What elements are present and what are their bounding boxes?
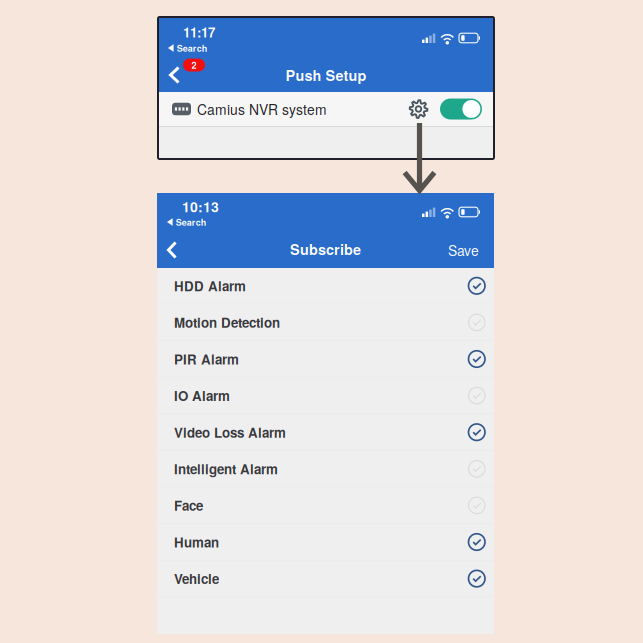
button[interactable]: Human [157, 524, 494, 561]
staticText: Human [174, 532, 219, 552]
button[interactable]: Face [157, 488, 494, 524]
staticText: Motion Detection [174, 313, 280, 332]
button[interactable]: HDD Alarm [157, 268, 494, 305]
staticText: Search [176, 215, 207, 228]
staticText: Face [174, 496, 203, 515]
button[interactable]: PIR Alarm [157, 341, 494, 378]
staticText: Save [448, 240, 479, 260]
staticText: Vehicle [174, 569, 219, 588]
button[interactable]: Camius NVR system [158, 92, 494, 126]
button[interactable]: Vehicle [157, 561, 494, 597]
staticText: PIR Alarm [174, 349, 239, 369]
staticText: IO Alarm [174, 386, 230, 405]
button[interactable]: Back [157, 239, 205, 261]
staticText: Camius NVR system [197, 99, 327, 119]
button[interactable]: Save [430, 239, 494, 261]
button[interactable]: IO Alarm [157, 378, 494, 414]
staticText: Video Loss Alarm [174, 423, 286, 442]
staticText: Search [177, 41, 208, 54]
button[interactable]: Intelligent Alarm [157, 451, 494, 488]
staticText: Intelligent Alarm [174, 459, 278, 478]
staticText: 2 [191, 58, 196, 71]
button[interactable]: Motion Detection [157, 305, 494, 341]
button[interactable]: Back [158, 58, 210, 91]
staticText: 11:17 [183, 22, 215, 42]
staticText: Push Setup [285, 65, 366, 85]
staticText: 10:13 [182, 196, 219, 216]
staticText: HDD Alarm [174, 276, 246, 295]
staticText: Subscribe [290, 239, 361, 259]
button[interactable]: Video Loss Alarm [157, 414, 494, 451]
